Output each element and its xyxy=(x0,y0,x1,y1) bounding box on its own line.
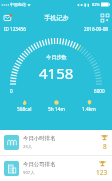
staticText: 今日步数 xyxy=(46,54,67,61)
staticText: 568cal xyxy=(17,106,32,113)
staticText: 中国电信 xyxy=(10,2,26,7)
staticText: 4158 xyxy=(39,63,74,83)
staticText: 2016-09-08 xyxy=(84,26,108,32)
staticText: 123 xyxy=(96,168,108,177)
staticText: ID 123456 xyxy=(4,26,26,32)
staticText: 6000 xyxy=(94,88,105,94)
staticText: 手机记步 xyxy=(44,14,69,22)
staticText: 今日小时排名 xyxy=(23,135,56,142)
staticText: 82% xyxy=(92,2,100,7)
staticText: 907人 xyxy=(23,170,35,176)
staticText: 8 xyxy=(103,142,107,151)
button[interactable]: 今日公司排名 xyxy=(0,156,112,181)
button[interactable]: Scan QR code xyxy=(100,13,109,22)
staticText: 0 xyxy=(10,88,13,94)
staticText: 5h 14m xyxy=(48,106,65,113)
staticText: 25人 xyxy=(23,144,32,150)
staticText: 今日公司排名 xyxy=(23,161,56,168)
staticText: 1.4km xyxy=(82,106,96,113)
button[interactable]: Messages xyxy=(3,13,12,22)
button[interactable]: 今日小时排名 xyxy=(0,130,112,155)
